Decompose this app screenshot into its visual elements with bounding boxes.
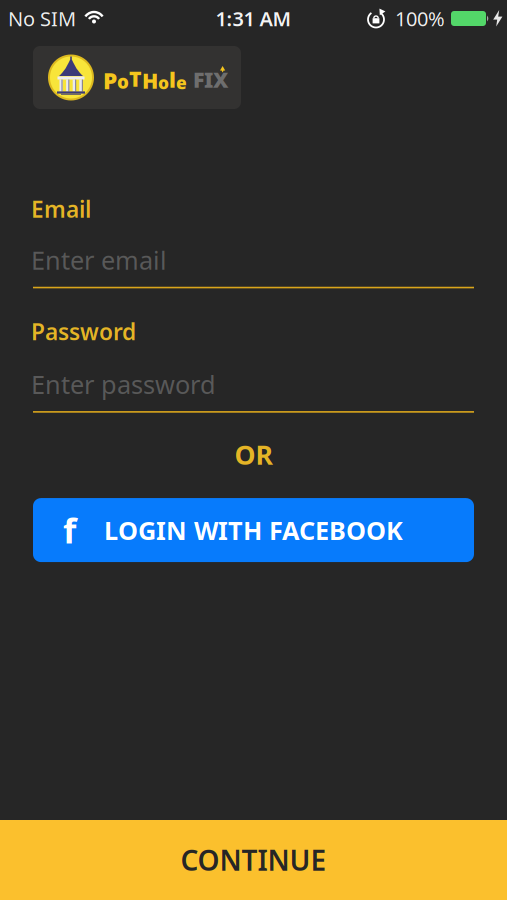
staticText: OR [234,437,272,472]
staticText: e [176,71,187,94]
staticText: 1:31 AM [215,5,291,32]
button[interactable]: CONTINUE [0,820,507,900]
staticText: CONTINUE [180,841,326,879]
staticText: FI [187,65,213,94]
staticText: No SIM [8,5,76,32]
staticText: o [158,71,169,94]
button[interactable]: f [33,498,474,562]
staticText: l [169,65,176,94]
staticText: o [117,69,129,94]
staticText: Email [31,194,91,224]
staticText: H [142,66,158,95]
staticText: T [129,64,142,93]
staticText: f [63,507,76,553]
staticText: Password [31,316,136,346]
staticText: Enter email [31,243,167,277]
staticText: P [103,65,117,95]
staticText: 100% [395,5,445,32]
staticText: Enter password [31,367,216,401]
button[interactable]: Enter password [33,346,474,413]
staticText: X [213,65,228,94]
button[interactable]: Enter email [33,224,474,288]
staticText: LOGIN WITH FACEBOOK [104,513,403,547]
